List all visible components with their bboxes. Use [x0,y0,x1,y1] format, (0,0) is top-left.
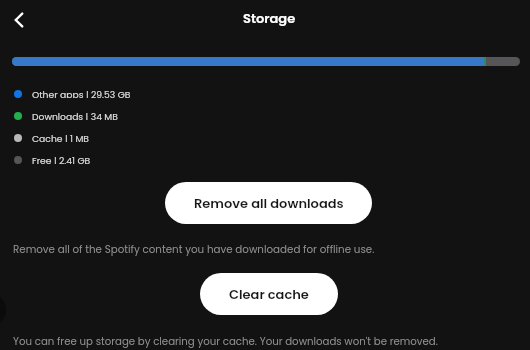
staticText: Remove all downloads [194,194,344,212]
staticText: Storage [243,9,296,27]
button[interactable]: Remove all downloads [165,182,372,224]
button[interactable]: Back [3,4,35,36]
staticText: Downloads | 34 MB [32,110,118,120]
staticText: You can free up storage by clearing your… [13,334,438,348]
staticText: Free | 2.41 GB [32,154,91,164]
staticText: Clear cache [229,285,309,303]
button[interactable]: Clear cache [200,273,338,315]
staticText: Other apps | 29.53 GB [32,88,131,98]
staticText: Remove all of the Spotify content you ha… [13,242,375,256]
staticText: Cache | 1 MB [32,132,89,142]
